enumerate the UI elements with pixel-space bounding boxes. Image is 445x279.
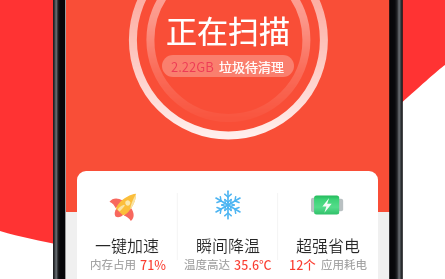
button[interactable]: 一键加速 [77,171,178,279]
staticText: 应用耗电 [321,256,367,273]
staticText: 2.22GB [171,57,214,76]
other: 超强省电 [311,190,345,220]
staticText: 内存占用 [90,256,136,273]
staticText: 71% [140,255,166,273]
button[interactable]: 超强省电 [278,171,378,279]
staticText: 正在扫描 [166,7,290,52]
other: 一键加速 [111,190,145,220]
other: 瞬间降温 [214,191,242,219]
staticText: 35.6℃ [234,255,272,273]
staticText: 温度高达 [184,256,230,273]
button[interactable]: 瞬间降温 [178,171,278,279]
staticText: 12个 [289,255,316,273]
staticText: 垃圾待清理 [219,57,285,76]
staticText: 瞬间降温 [196,233,261,256]
staticText: 超强省电 [296,233,361,256]
staticText: 一键加速 [95,233,160,256]
